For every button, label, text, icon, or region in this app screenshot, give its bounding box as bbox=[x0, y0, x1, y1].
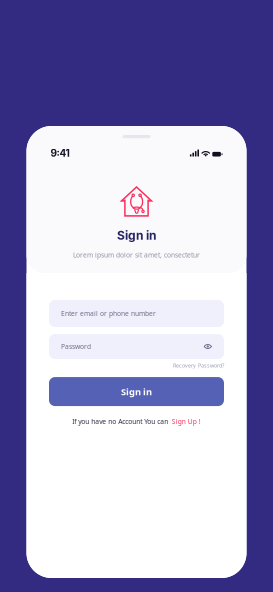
button[interactable]: Enter email or phone number bbox=[49, 300, 224, 327]
staticText: Recovery Password? bbox=[173, 362, 224, 369]
staticText: Sign Up ! bbox=[172, 417, 201, 426]
staticText: Sign in bbox=[117, 228, 156, 242]
staticText: Sign in bbox=[121, 385, 152, 398]
staticText: Password bbox=[61, 342, 91, 351]
staticText: 9:41 bbox=[50, 147, 69, 159]
staticText: Enter email or phone number bbox=[61, 309, 156, 318]
button[interactable]: Sign in bbox=[49, 377, 224, 406]
button[interactable]: Recovery Password? bbox=[173, 362, 224, 369]
button[interactable]: Password bbox=[49, 334, 224, 359]
button[interactable]: Sign Up ! bbox=[172, 417, 201, 426]
staticText: If you have no Account You can bbox=[72, 417, 168, 426]
staticText: Lorem ipsum dolor sit amet, consectetur bbox=[73, 250, 200, 259]
